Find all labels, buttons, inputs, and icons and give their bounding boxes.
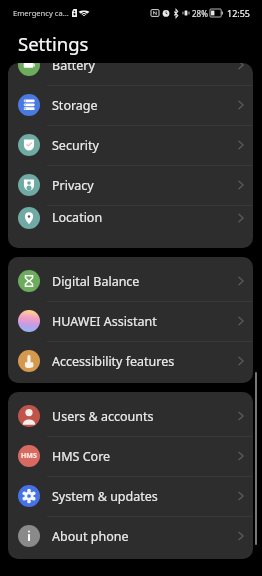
staticText: Digital Balance [52,273,140,290]
staticText: Accessibility features [52,353,175,370]
button[interactable]: Privacy [8,165,253,205]
button[interactable]: Location [8,205,253,230]
button[interactable]: HUAWEI Assistant [8,301,253,341]
staticText: Battery [52,63,95,74]
button[interactable]: Storage [8,85,253,125]
staticText: Settings [18,31,89,56]
staticText: System & updates [52,488,158,505]
staticText: Security [52,137,99,154]
button[interactable]: System & updates [8,476,253,516]
staticText: 12:55 [227,7,251,19]
staticText: About phone [52,528,129,545]
button[interactable]: About phone [8,516,253,556]
staticText: 28% [192,8,208,19]
button[interactable]: Users & accounts [8,396,253,436]
staticText: HUAWEI Assistant [52,313,157,330]
staticText: Emergency ca... [13,8,69,18]
staticText: HMS Core [52,448,111,465]
button[interactable]: Battery [8,63,253,85]
button[interactable]: HMS [8,436,253,476]
button[interactable]: Digital Balance [8,261,253,301]
staticText: Users & accounts [52,408,154,425]
staticText: Storage [52,97,98,114]
button[interactable]: Security [8,125,253,165]
button[interactable]: Accessibility features [8,341,253,381]
staticText: HMS [21,451,37,461]
staticText: Privacy [52,177,94,194]
staticText: Location [52,209,103,226]
